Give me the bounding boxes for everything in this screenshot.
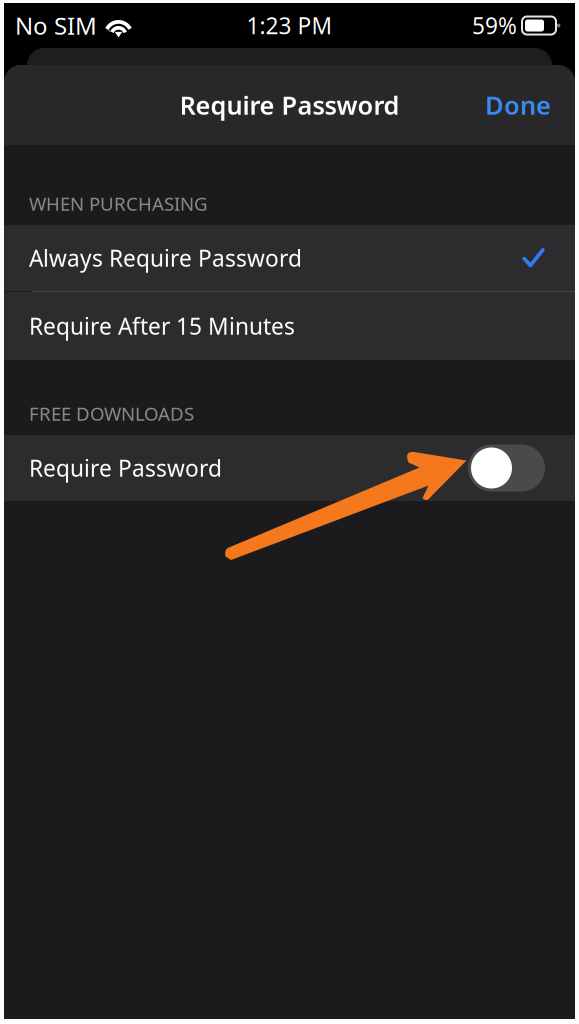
staticText: Always Require Password xyxy=(29,243,302,273)
staticText: FREE DOWNLOADS xyxy=(29,401,194,426)
button[interactable]: Done xyxy=(461,70,575,140)
staticText: Require After 15 Minutes xyxy=(29,311,295,341)
button[interactable]: Always Require Password xyxy=(4,225,575,291)
staticText: Require Password xyxy=(29,453,222,483)
staticText: No SIM xyxy=(15,10,97,41)
staticText: 59% xyxy=(472,10,517,40)
staticText: Done xyxy=(485,88,551,122)
button[interactable]: Require After 15 Minutes xyxy=(4,292,575,360)
button[interactable]: Require Password xyxy=(4,435,575,501)
staticText: 1:23 PM xyxy=(246,10,332,40)
staticText: Require Password xyxy=(179,88,399,122)
staticText: WHEN PURCHASING xyxy=(29,191,208,216)
